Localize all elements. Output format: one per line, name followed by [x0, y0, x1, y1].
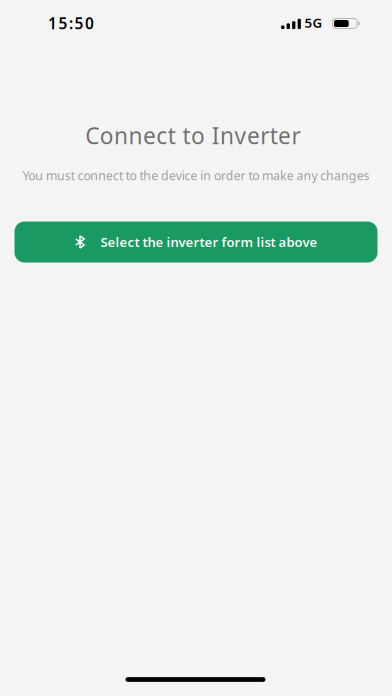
staticText: Select the inverter form list above — [100, 233, 317, 251]
button[interactable]: Select the inverter form list above — [14, 221, 377, 262]
staticText: 15:50 — [48, 13, 94, 34]
staticText: 5G — [304, 13, 322, 32]
staticText: Connect to Inverter — [85, 120, 300, 151]
staticText: You must connect to the device in order … — [22, 167, 370, 184]
